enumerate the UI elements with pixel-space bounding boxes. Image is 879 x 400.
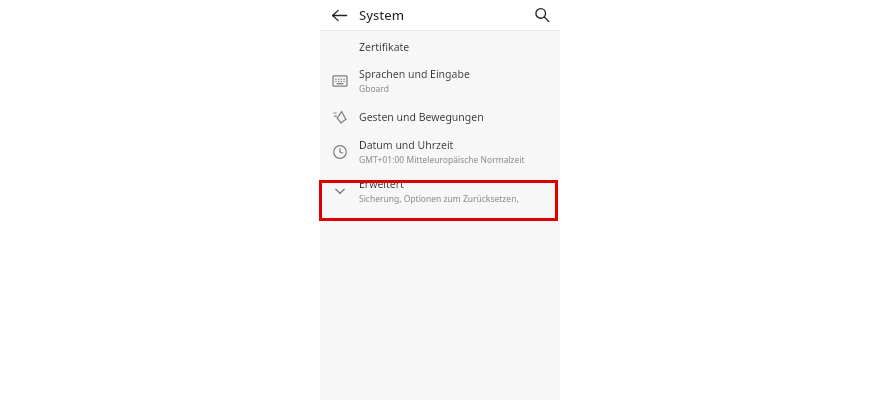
- button[interactable]: Datum und Uhrzeit: [320, 133, 560, 171]
- staticText: Zertifikate: [359, 40, 410, 54]
- staticText: Datum und Uhrzeit: [359, 138, 454, 152]
- staticText: System: [359, 6, 405, 24]
- button[interactable]: Gesten und Bewegungen: [320, 100, 560, 133]
- button[interactable]: Sprachen und Eingabe: [320, 62, 560, 100]
- staticText: Sprachen und Eingabe: [359, 67, 470, 81]
- button[interactable]: Zertifikate: [320, 31, 560, 62]
- staticText: Erweitert: [359, 177, 404, 191]
- staticText: Gesten und Bewegungen: [359, 110, 484, 124]
- button[interactable]: Back: [320, 0, 359, 30]
- staticText: GMT+01:00 Mitteleuropäische Normalzeit: [359, 154, 525, 166]
- staticText: Sicherung, Optionen zum Zurücksetzen, Me…: [359, 193, 550, 205]
- staticText: Gboard: [359, 83, 389, 95]
- button[interactable]: Erweitert: [320, 171, 560, 211]
- button[interactable]: Search: [524, 0, 560, 30]
